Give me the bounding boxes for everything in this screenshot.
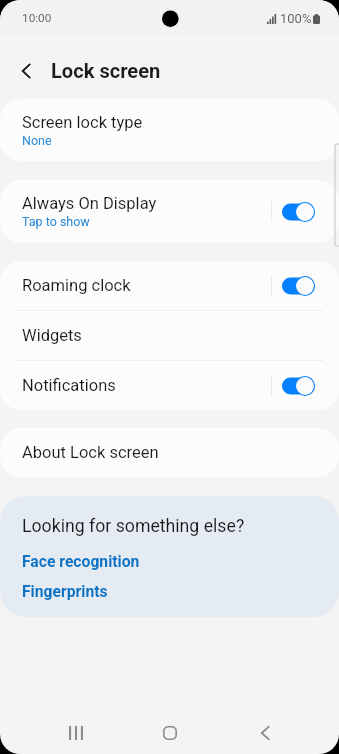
button[interactable]: Recent apps [41,712,111,754]
button[interactable]: Fingerprints [22,582,108,600]
button[interactable]: Navigate up [0,47,44,95]
staticText: Tap to show [22,214,90,229]
staticText: Notifications [22,376,116,395]
staticText: Always On Display [22,194,157,213]
button[interactable]: Toggle Always On Display [282,201,315,223]
button[interactable]: Always On Display [0,180,339,243]
staticText: 100% [280,11,312,26]
staticText: Looking for something else? [22,516,245,537]
staticText: About Lock screen [22,443,159,462]
button[interactable]: Toggle Notifications [282,375,315,397]
button[interactable]: About Lock screen [0,428,339,477]
button[interactable]: Notifications [0,361,339,410]
staticText: Widgets [22,326,82,345]
button[interactable]: Home [135,712,205,754]
button[interactable]: Screen lock type [0,99,339,161]
button[interactable]: Widgets [0,311,339,360]
staticText: Roaming clock [22,276,131,295]
button[interactable]: Roaming clock [0,261,339,310]
staticText: Screen lock type [22,113,143,132]
button[interactable]: Face recognition [22,552,140,570]
staticText: Lock screen [51,59,161,83]
staticText: 10:00 [22,11,52,25]
staticText: None [22,133,52,148]
button[interactable]: Back [231,712,301,754]
button[interactable]: Toggle Roaming clock [282,275,315,297]
